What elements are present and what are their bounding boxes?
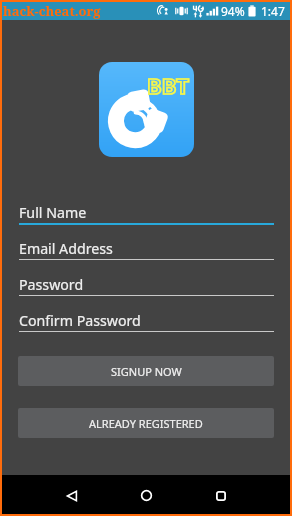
- button[interactable]: Recent apps: [201, 476, 241, 515]
- button[interactable]: Password: [19, 275, 274, 294]
- button[interactable]: Confirm Password: [19, 311, 274, 330]
- button[interactable]: Full Name: [19, 203, 274, 222]
- button[interactable]: Back: [52, 476, 92, 515]
- button[interactable]: Home: [126, 476, 166, 515]
- staticText: hack-cheat.org: [3, 2, 101, 20]
- button[interactable]: ALREADY REGISTERED: [18, 408, 274, 438]
- staticText: 94%: [221, 3, 245, 19]
- staticText: SIGNUP NOW: [111, 364, 182, 379]
- staticText: 1:47: [261, 3, 285, 19]
- staticText: Email Address: [19, 239, 113, 258]
- button[interactable]: SIGNUP NOW: [18, 356, 274, 386]
- staticText: Confirm Password: [19, 311, 141, 330]
- staticText: Full Name: [19, 203, 87, 222]
- staticText: Password: [19, 275, 84, 294]
- button[interactable]: Email Address: [19, 239, 274, 258]
- staticText: ALREADY REGISTERED: [89, 416, 203, 431]
- staticText: BBT: [147, 70, 189, 100]
